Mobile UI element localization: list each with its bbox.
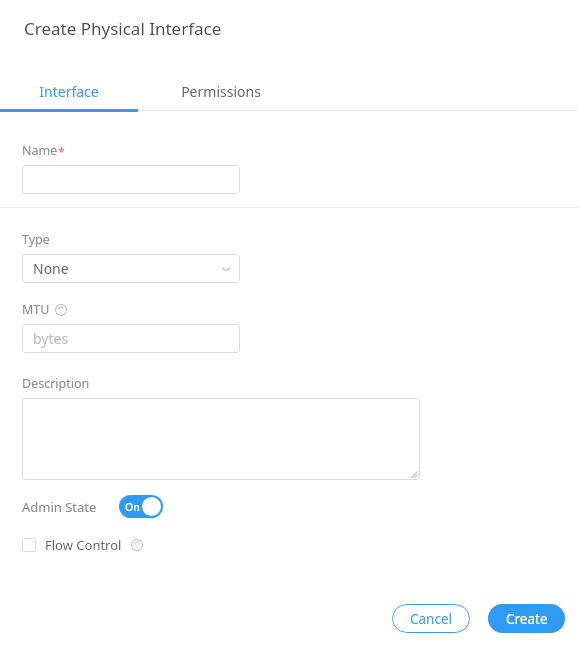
button[interactable]: Flow Control [22, 536, 143, 554]
button[interactable] [22, 165, 240, 194]
staticText: On [125, 500, 140, 514]
button[interactable]: bytes [22, 324, 240, 353]
staticText: Interface [39, 82, 99, 101]
staticText: Admin State [22, 498, 97, 516]
button[interactable]: Create [488, 604, 565, 633]
staticText: * [58, 144, 65, 160]
staticText: Permissions [181, 82, 261, 101]
staticText: Type [22, 231, 50, 248]
staticText: None [33, 259, 69, 278]
button[interactable]: Interface [0, 74, 138, 112]
staticText: Name [22, 142, 58, 159]
staticText: bytes [33, 329, 69, 348]
button[interactable]: Permissions [160, 74, 282, 112]
button[interactable] [22, 398, 420, 480]
button[interactable]: Cancel [392, 604, 470, 633]
button[interactable]: Admin State toggle, On [119, 495, 163, 518]
staticText: Description [22, 375, 90, 392]
button[interactable]: None [22, 254, 240, 283]
staticText: Flow Control [45, 536, 122, 554]
staticText: MTU [22, 301, 50, 318]
staticText: Cancel [410, 610, 453, 628]
staticText: Create Physical Interface [24, 17, 222, 40]
staticText: Create [506, 610, 548, 628]
